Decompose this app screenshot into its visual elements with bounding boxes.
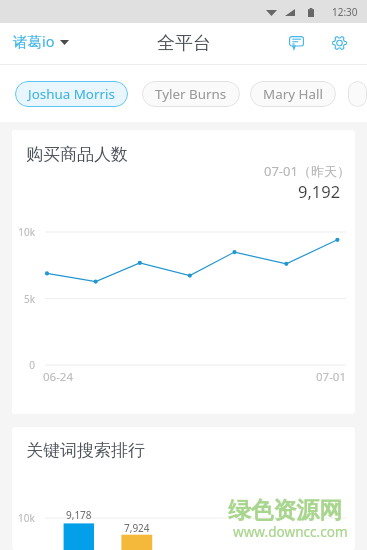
staticText: 07-01 [316, 369, 347, 385]
staticText: Tyler Burns [155, 85, 227, 103]
button[interactable]: Messages [280, 27, 312, 59]
staticText: www.downcc.com [233, 522, 348, 541]
staticText: 7,924 [124, 521, 150, 535]
staticText: 9,192 [298, 180, 341, 202]
staticText: 12:30 [332, 5, 358, 19]
staticText: 诸葛io [13, 31, 55, 51]
staticText: 07-01（昨天） [264, 162, 350, 180]
button[interactable]: Joshua Morris [15, 81, 128, 107]
staticText: 10k [18, 511, 35, 525]
button[interactable]: 关键词搜索排行 [12, 427, 355, 550]
button[interactable]: Tyler Burns [142, 81, 240, 107]
staticText: 0 [29, 358, 35, 372]
staticText: Mary Hall [263, 85, 323, 103]
staticText: Joshua Morris [28, 85, 115, 103]
staticText: 关键词搜索排行 [26, 440, 145, 461]
button[interactable]: 购买商品人数 [12, 130, 355, 414]
staticText: 全平台 [157, 32, 211, 55]
staticText: 10k [18, 225, 35, 239]
staticText: 06-24 [43, 369, 74, 385]
staticText: 5k [23, 292, 35, 306]
staticText: 绿色资源网 [228, 496, 342, 525]
staticText: 9,178 [66, 508, 92, 522]
button[interactable]: 诸葛io [0, 25, 79, 57]
staticText: 购买商品人数 [26, 144, 128, 165]
button[interactable]: Settings [323, 27, 355, 59]
button[interactable]: Mary Hall [250, 81, 336, 107]
button[interactable]: Marcus [348, 81, 367, 107]
